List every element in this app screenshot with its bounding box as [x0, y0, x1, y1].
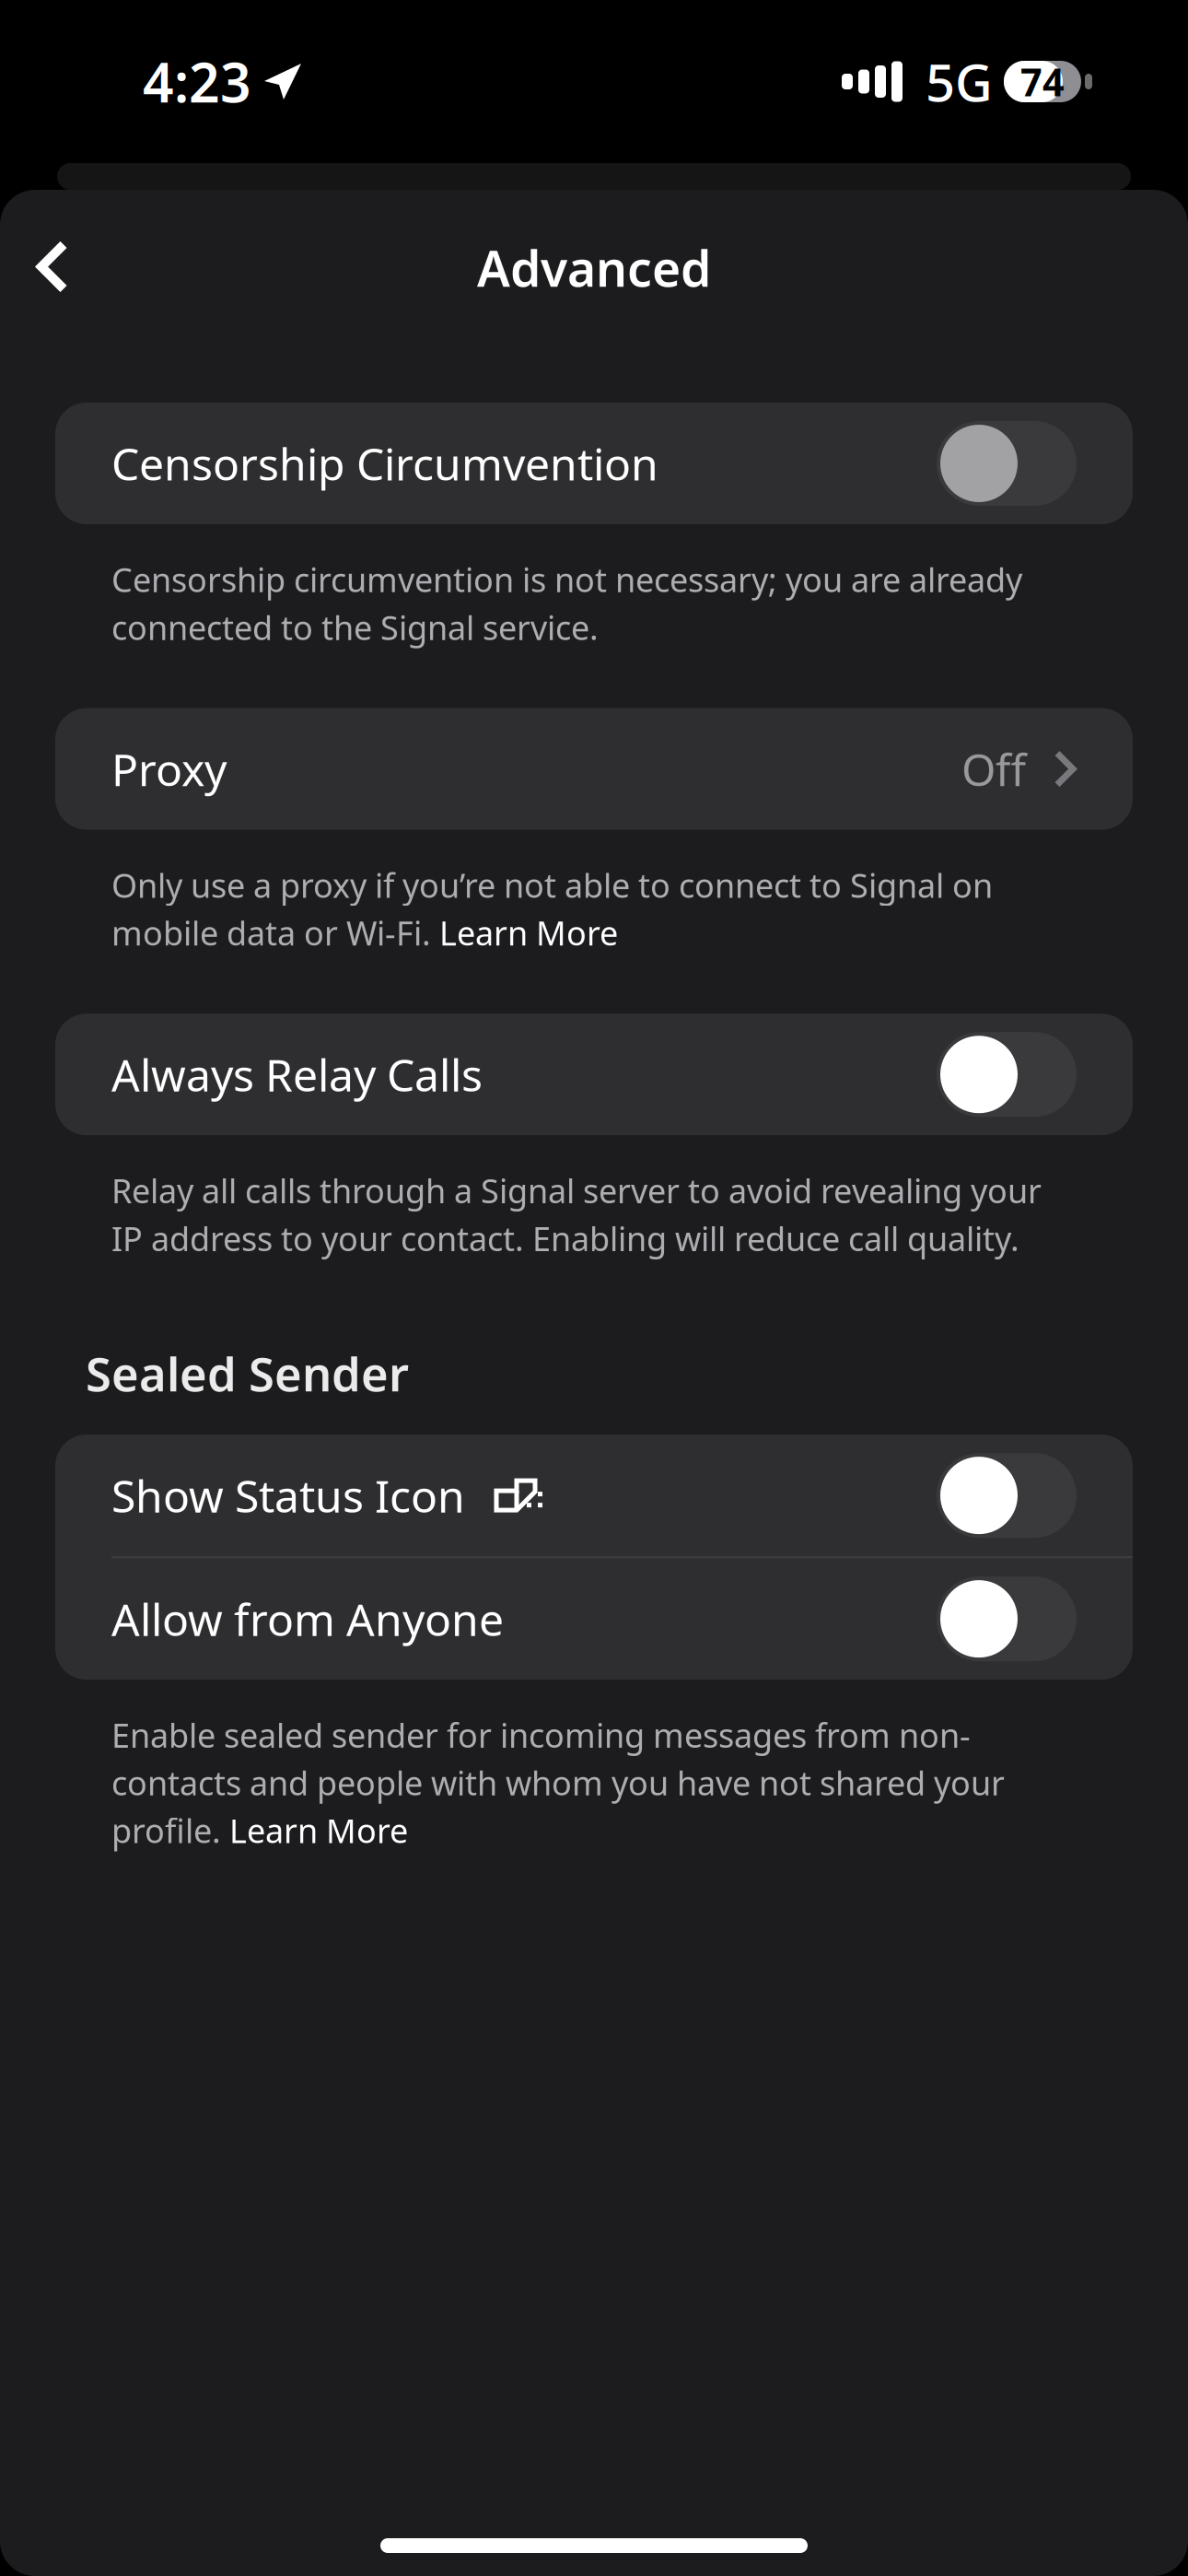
staticText: 74 — [1020, 56, 1065, 107]
button[interactable]: Back — [1, 216, 104, 319]
staticText: Relay all calls through a Signal server … — [111, 1168, 1042, 1260]
staticText: 5G — [926, 47, 993, 116]
staticText: Enable sealed sender for incoming messag… — [111, 1713, 1005, 1852]
staticText: Advanced — [477, 235, 711, 300]
staticText: Show Status Icon — [111, 1466, 465, 1525]
button[interactable]: Allow from Anyone — [55, 1558, 1133, 1680]
staticText: Proxy — [111, 740, 227, 798]
staticText: Censorship Circumvention — [111, 434, 658, 493]
button[interactable]: Always Relay Calls — [55, 1014, 1133, 1135]
staticText: Off — [961, 740, 1026, 798]
button[interactable]: Proxy — [55, 708, 1133, 830]
button[interactable]: Censorship Circumvention — [55, 403, 1133, 524]
button[interactable]: Show Status Icon — [55, 1435, 1133, 1556]
staticText: Censorship circumvention is not necessar… — [111, 557, 1022, 649]
staticText: Only use a proxy if you’re not able to c… — [111, 863, 993, 955]
staticText: Always Relay Calls — [111, 1045, 483, 1104]
staticText: Allow from Anyone — [111, 1590, 504, 1648]
staticText: 4:23 — [143, 46, 251, 117]
staticText: Sealed Sender — [86, 1342, 409, 1404]
